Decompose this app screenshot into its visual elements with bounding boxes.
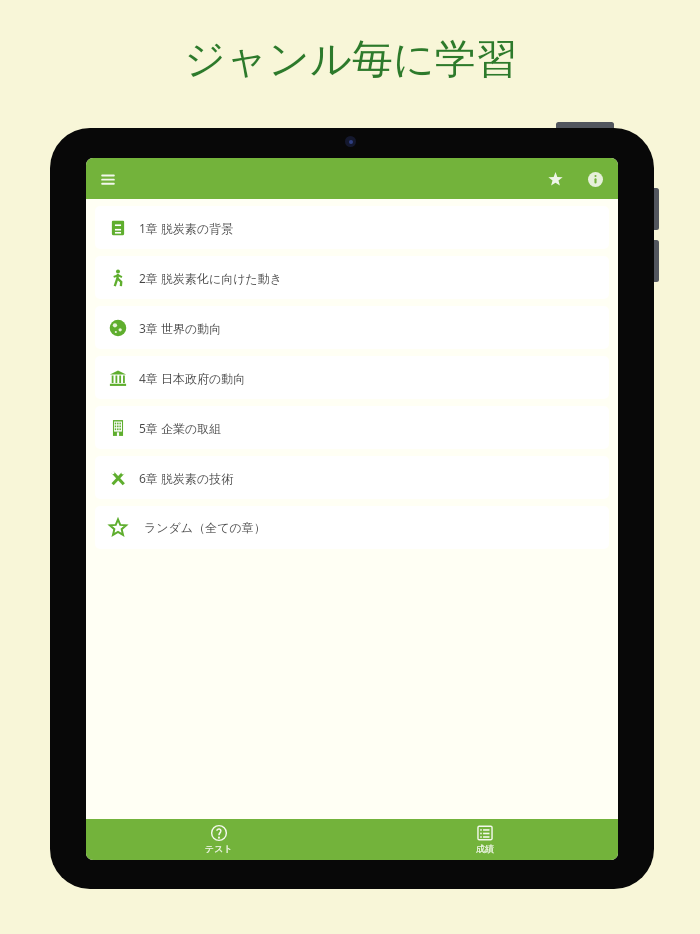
staticText: ジャンル毎に学習	[184, 34, 517, 86]
staticText: 6章 脱炭素の技術	[139, 470, 234, 486]
button[interactable]: Favorite	[540, 164, 570, 194]
button[interactable]: 6章 脱炭素の技術	[95, 456, 609, 499]
staticText: 成績	[476, 843, 494, 854]
button[interactable]: テスト	[86, 819, 352, 860]
button[interactable]: 5章 企業の取組	[95, 406, 609, 449]
staticText: テスト	[205, 843, 233, 854]
staticText: 3章 世界の動向	[139, 320, 222, 336]
staticText: 5章 企業の取組	[139, 420, 222, 436]
button[interactable]: ランダム（全ての章）	[95, 506, 609, 549]
button[interactable]: 2章 脱炭素化に向けた動き	[95, 256, 609, 299]
button[interactable]: 4章 日本政府の動向	[95, 356, 609, 399]
staticText: 4章 日本政府の動向	[139, 370, 246, 386]
button[interactable]: 3章 世界の動向	[95, 306, 609, 349]
staticText: ランダム（全ての章）	[144, 520, 266, 535]
button[interactable]: 1章 脱炭素の背景	[95, 206, 609, 249]
button[interactable]: Info	[580, 164, 610, 194]
staticText: 1章 脱炭素の背景	[139, 220, 234, 236]
staticText: 2章 脱炭素化に向けた動き	[139, 270, 283, 286]
button[interactable]: 成績	[352, 819, 618, 860]
button[interactable]: Menu	[92, 163, 124, 195]
